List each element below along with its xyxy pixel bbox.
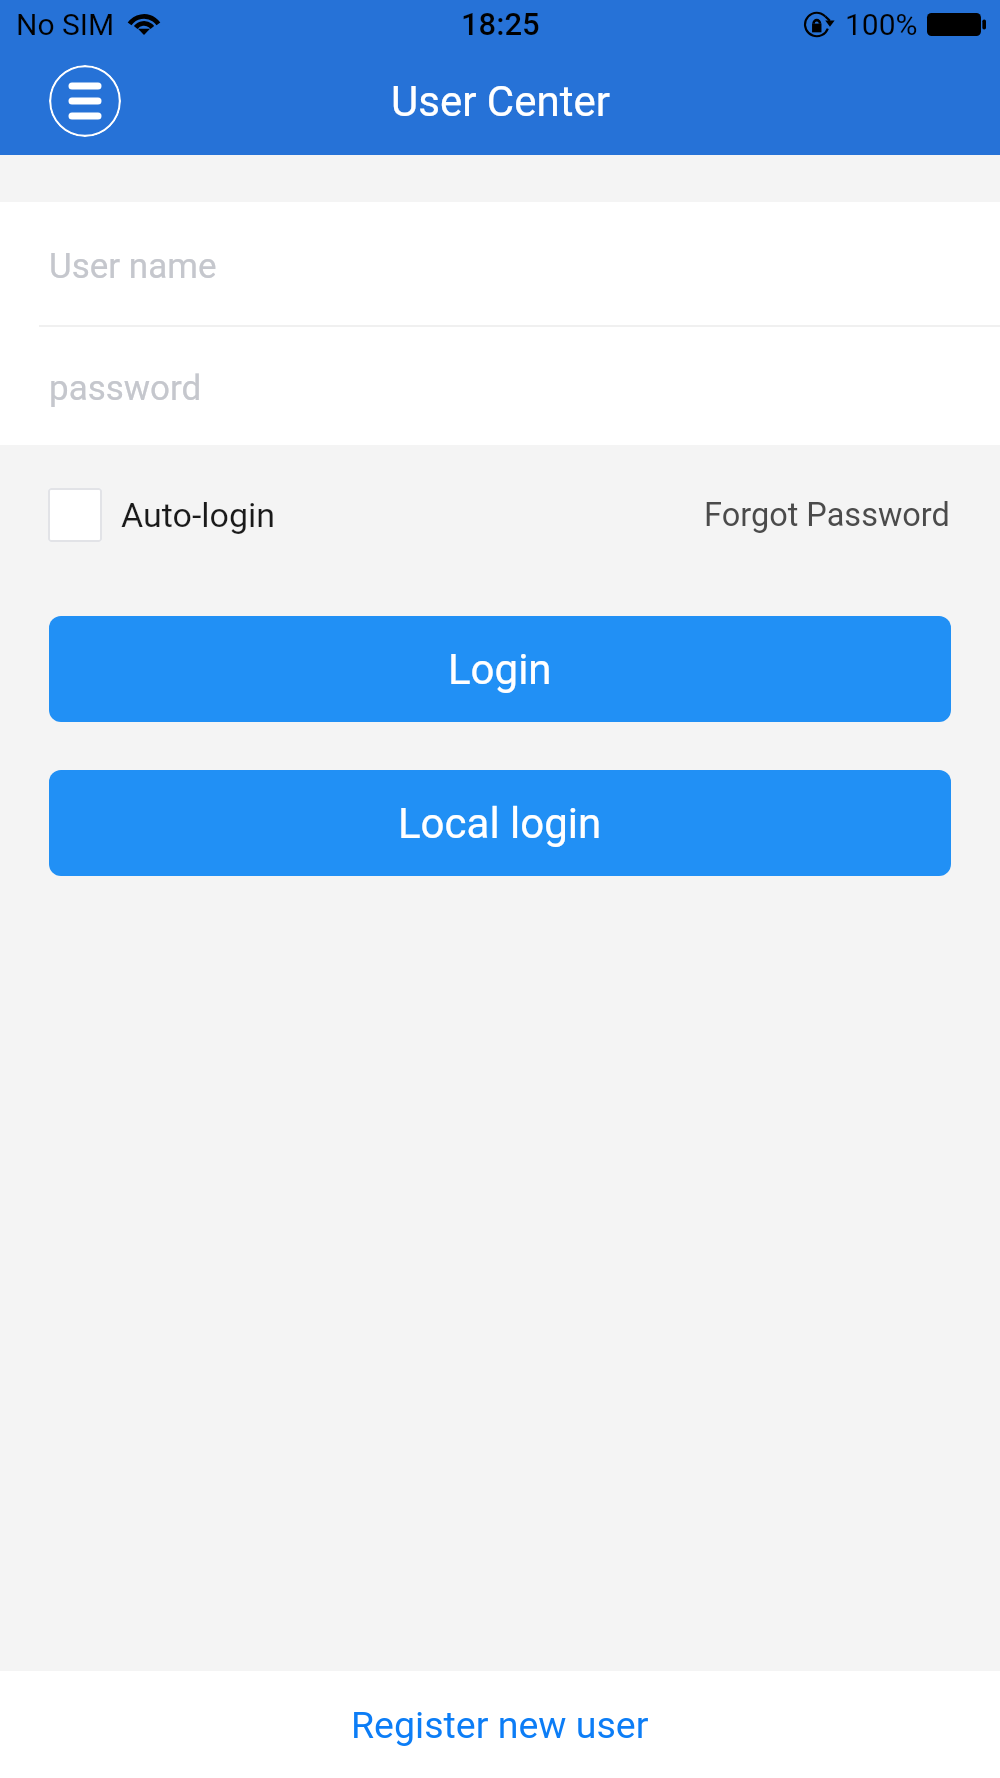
staticText: Auto-login xyxy=(121,495,276,535)
staticText: No SIM xyxy=(16,7,115,42)
button[interactable]: Auto-login xyxy=(48,488,276,542)
button[interactable]: User name xyxy=(0,202,1000,325)
staticText: 18:25 xyxy=(461,6,540,42)
staticText: Forgot Password xyxy=(704,496,950,534)
staticText: 100% xyxy=(845,7,918,42)
button[interactable]: Register new user xyxy=(0,1671,1000,1778)
button[interactable]: Menu xyxy=(49,65,121,137)
staticText: password xyxy=(49,368,202,409)
staticText: User Center xyxy=(391,77,610,126)
button[interactable]: Forgot Password xyxy=(704,496,950,534)
staticText: Register new user xyxy=(351,1703,649,1747)
button[interactable]: Local login xyxy=(49,770,951,876)
staticText: User name xyxy=(49,246,217,287)
staticText: Local login xyxy=(398,799,602,848)
staticText: Login xyxy=(448,645,552,694)
button[interactable]: Login xyxy=(49,616,951,722)
button[interactable]: password xyxy=(0,327,1000,445)
